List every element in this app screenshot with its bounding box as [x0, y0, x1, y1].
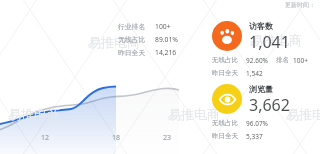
staticText: 昨日全天: [118, 48, 150, 57]
staticText: 1,041: [249, 31, 290, 53]
staticText: 排名: [276, 56, 293, 64]
button[interactable]: 浏览量: [212, 84, 290, 141]
staticText: 92.60%: [246, 56, 276, 65]
staticText: 易推电商: [8, 106, 60, 122]
button[interactable]: 访客数: [212, 21, 308, 78]
staticText: 易推电商: [250, 32, 302, 48]
staticText: 100+: [293, 56, 308, 65]
staticText: 1,542: [246, 69, 263, 78]
button[interactable]: 行业排名: [118, 22, 179, 57]
staticText: 23: [163, 133, 172, 143]
staticText: 昨日全天: [212, 69, 242, 77]
staticText: 96.07%: [246, 119, 269, 128]
staticText: 18: [112, 133, 121, 143]
staticText: 易推电商: [88, 34, 140, 50]
staticText: 14,216: [155, 48, 177, 57]
staticText: 12: [41, 133, 50, 143]
staticText: 易推电商: [168, 106, 220, 122]
staticText: 昨日全天: [212, 132, 242, 140]
staticText: 无线占比: [118, 35, 150, 44]
staticText: 易推电: [286, 106, 320, 122]
staticText: 3,662: [249, 94, 290, 116]
staticText: 89.01%: [155, 35, 179, 44]
other: 访客数: [212, 21, 242, 51]
staticText: 无线占比: [212, 56, 242, 64]
staticText: 100+: [155, 22, 171, 31]
staticText: 无线占比: [212, 119, 242, 127]
staticText: 行业排名: [118, 22, 150, 31]
staticText: 更新时间：: [285, 1, 315, 9]
staticText: 5,337: [246, 132, 263, 141]
staticText: 访客数: [249, 21, 273, 31]
other: 浏览量: [212, 84, 242, 114]
staticText: 浏览量: [249, 84, 273, 94]
